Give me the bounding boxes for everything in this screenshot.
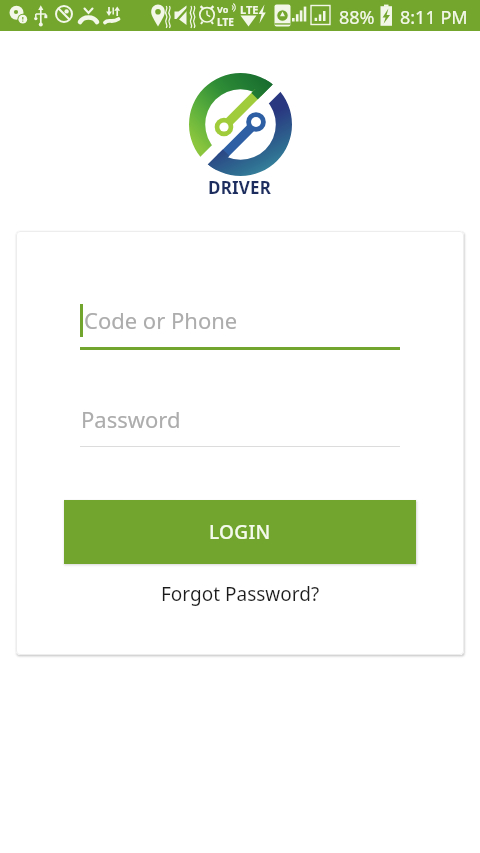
button[interactable]: Password xyxy=(80,396,400,447)
button[interactable]: Forgot Password? xyxy=(151,577,330,611)
staticText: DRIVER xyxy=(208,176,272,199)
staticText: Forgot Password? xyxy=(161,581,320,607)
staticText: Vo xyxy=(217,3,229,15)
staticText: LTE xyxy=(240,2,259,17)
staticText: 88% xyxy=(339,5,375,30)
staticText: Code or Phone xyxy=(84,305,238,335)
staticText: LTE xyxy=(217,15,234,29)
button[interactable]: Code or Phone xyxy=(80,296,400,350)
staticText: Password xyxy=(81,404,181,434)
button[interactable]: LOGIN xyxy=(64,500,416,564)
staticText: LOGIN xyxy=(209,519,271,545)
staticText: 8:11 PM xyxy=(400,5,468,30)
